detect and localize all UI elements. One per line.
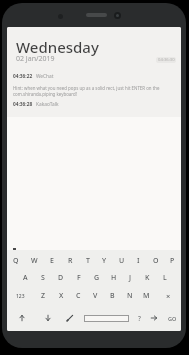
button[interactable]: U	[113, 254, 130, 268]
button[interactable]: S	[34, 271, 52, 285]
staticText: W	[31, 256, 38, 266]
staticText: E	[50, 256, 54, 266]
staticText: 04:36:28	[13, 101, 33, 108]
button[interactable]: L	[156, 271, 173, 285]
staticText: com.shiranda.piping keyboard!	[13, 91, 77, 97]
staticText: L	[163, 273, 167, 283]
staticText: Hint: when what you need pops up as a so…	[13, 85, 160, 91]
button[interactable]: J	[122, 271, 139, 285]
staticText: N	[127, 291, 133, 301]
button[interactable]: 04:36:28	[13, 101, 59, 108]
button[interactable]: A	[16, 271, 34, 285]
button[interactable]: 123	[7, 289, 34, 303]
staticText: P	[170, 256, 175, 266]
button[interactable]: F	[70, 271, 88, 285]
button[interactable]	[62, 311, 78, 325]
button[interactable]: Z	[34, 289, 52, 303]
staticText: 04:36:22	[13, 73, 33, 80]
button[interactable]: B	[104, 289, 121, 303]
button[interactable]: G	[88, 271, 105, 285]
button[interactable]: R	[61, 254, 79, 268]
button[interactable]: K	[139, 271, 156, 285]
button[interactable]: T	[79, 254, 96, 268]
staticText: GO	[168, 315, 177, 322]
button[interactable]: O	[147, 254, 164, 268]
staticText: Q	[13, 256, 19, 266]
button[interactable]: V	[87, 289, 104, 303]
button[interactable]: M	[138, 289, 155, 303]
staticText: A	[23, 273, 28, 283]
staticText: C	[76, 291, 81, 301]
staticText: 02 Jan/2019	[16, 54, 55, 64]
staticText: T	[86, 256, 90, 266]
staticText: ?	[138, 314, 141, 323]
button[interactable]: D	[52, 271, 70, 285]
button[interactable]	[40, 311, 56, 325]
button[interactable]: C	[70, 289, 87, 303]
button[interactable]: ?	[131, 311, 147, 325]
staticText: Z	[41, 291, 46, 301]
staticText: 04:36:30	[158, 57, 175, 63]
button[interactable]: I	[130, 254, 147, 268]
staticText: U	[119, 256, 125, 266]
button[interactable]: W	[25, 254, 43, 268]
staticText: O	[153, 256, 159, 266]
staticText: K	[145, 273, 150, 283]
staticText: B	[110, 291, 115, 301]
button[interactable]: E	[43, 254, 61, 268]
staticText: 123	[16, 293, 25, 300]
staticText: H	[111, 273, 117, 283]
staticText: Y	[102, 256, 107, 266]
button[interactable]: Q	[7, 254, 25, 268]
staticText: M	[143, 291, 150, 301]
button[interactable]: Y	[96, 254, 113, 268]
button[interactable]: GO	[163, 311, 181, 325]
staticText: KakaoTalk	[36, 101, 59, 108]
button[interactable]: 04:36:22	[13, 73, 54, 80]
button[interactable]: H	[105, 271, 122, 285]
button[interactable]	[146, 311, 162, 325]
button[interactable]: P	[164, 254, 181, 268]
staticText: G	[94, 273, 100, 283]
staticText: WeChat	[36, 73, 54, 80]
staticText: Wednesday	[16, 37, 99, 57]
button[interactable]: N	[121, 289, 138, 303]
button[interactable]: X	[52, 289, 70, 303]
staticText: R	[68, 256, 73, 266]
staticText: J	[129, 273, 132, 283]
staticText: V	[93, 291, 98, 301]
staticText: S	[41, 273, 45, 283]
staticText: I	[137, 256, 140, 266]
button[interactable]	[14, 311, 30, 325]
button[interactable]: 04:36:30	[156, 57, 176, 63]
staticText: F	[77, 273, 81, 283]
staticText: X	[59, 291, 64, 301]
staticText: ×	[166, 291, 171, 301]
button[interactable]: ×	[155, 289, 181, 303]
staticText: D	[58, 273, 64, 283]
button[interactable]	[84, 315, 129, 322]
